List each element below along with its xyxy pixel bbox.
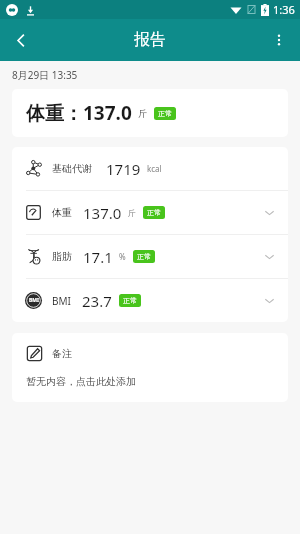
button[interactable]: 体重	[12, 191, 288, 234]
staticText: 1:36	[273, 2, 295, 17]
button[interactable]: BMI	[12, 279, 288, 322]
staticText: BMI	[52, 294, 71, 308]
staticText: 体重：137.0	[26, 100, 132, 126]
staticText: 137.0	[83, 203, 122, 223]
staticText: 斤	[128, 208, 136, 218]
staticText: %	[119, 251, 126, 262]
staticText: 正常	[158, 109, 172, 118]
staticText: 基础代谢	[52, 162, 92, 175]
staticText: 正常	[123, 296, 137, 305]
staticText: 正常	[137, 252, 151, 261]
staticText: 体重	[52, 206, 72, 219]
staticText: kcal	[147, 163, 162, 174]
staticText: 暂无内容，点击此处添加	[26, 375, 136, 388]
button[interactable]: 脂肪	[12, 235, 288, 278]
staticText: BMI	[29, 297, 39, 304]
staticText: 脂肪	[52, 250, 72, 263]
staticText: 17.1	[83, 247, 113, 267]
staticText: 斤	[138, 108, 147, 119]
staticText: 备注	[52, 347, 72, 360]
staticText: 8月29日 13:35	[12, 68, 78, 82]
button[interactable]: Back	[0, 19, 42, 61]
button[interactable]: 备注	[12, 333, 288, 402]
staticText: 23.7	[82, 291, 112, 311]
staticText: 报告	[134, 30, 166, 50]
button[interactable]: More options	[258, 19, 300, 61]
staticText: 1719	[106, 159, 141, 179]
button[interactable]: 体重：137.0	[12, 89, 288, 137]
button[interactable]: 基础代谢	[12, 147, 288, 190]
staticText: 正常	[147, 208, 161, 217]
